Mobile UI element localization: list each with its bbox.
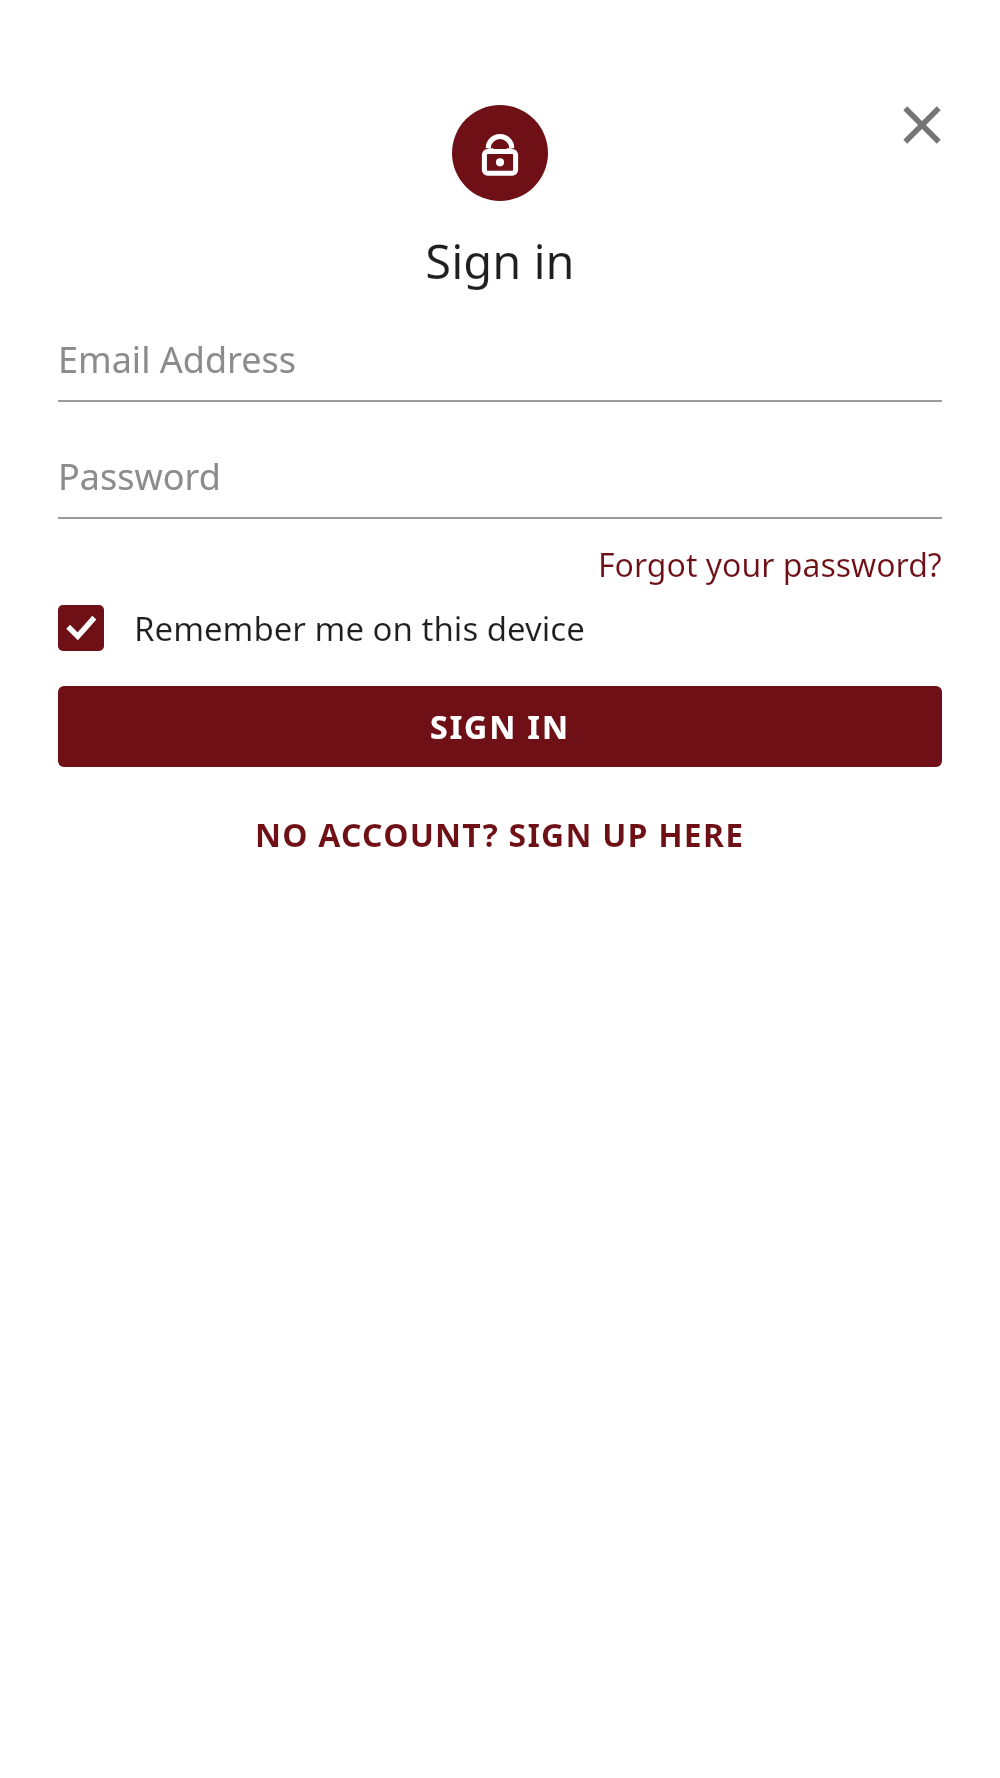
button[interactable]: Remember me on this device bbox=[58, 605, 1000, 651]
button[interactable]: NO ACCOUNT? SIGN UP HERE bbox=[235, 803, 765, 867]
staticText: Remember me on this device bbox=[134, 606, 585, 651]
staticText: Forgot your password? bbox=[598, 543, 942, 587]
button[interactable]: Close bbox=[874, 77, 970, 173]
staticText: SIGN IN bbox=[430, 705, 571, 749]
button[interactable]: Password bbox=[58, 452, 942, 519]
staticText: Password bbox=[58, 452, 221, 501]
staticText: Email Address bbox=[58, 335, 297, 384]
button[interactable]: Email Address bbox=[58, 335, 942, 402]
button[interactable]: SIGN IN bbox=[58, 686, 942, 767]
button[interactable]: Forgot your password? bbox=[598, 543, 942, 587]
staticText: Sign in bbox=[0, 229, 1000, 293]
staticText: NO ACCOUNT? SIGN UP HERE bbox=[255, 813, 745, 857]
